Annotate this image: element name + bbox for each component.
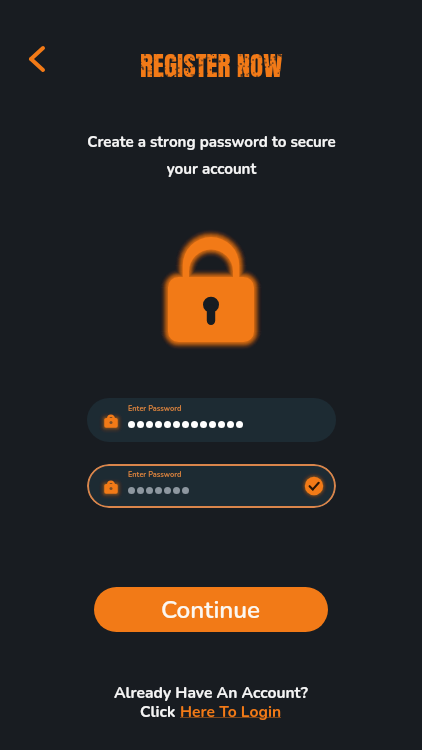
other: Password valid xyxy=(301,473,327,499)
staticText: Continue xyxy=(161,593,261,626)
staticText: Create a strong password to secure your … xyxy=(87,132,336,179)
button[interactable]: Enter Password xyxy=(87,398,336,442)
button[interactable]: Back xyxy=(16,38,58,80)
staticText: Enter Password xyxy=(128,404,182,414)
staticText: Enter Password xyxy=(128,470,182,480)
button[interactable]: Enter Password xyxy=(87,464,336,508)
button[interactable]: Continue xyxy=(94,587,328,632)
staticText: Here To Login xyxy=(180,701,282,722)
staticText: Already Have An Account? xyxy=(114,682,308,703)
staticText: Click xyxy=(140,701,180,722)
button[interactable]: Here To Login xyxy=(180,701,282,722)
staticText: REGISTER NOW xyxy=(140,45,283,86)
